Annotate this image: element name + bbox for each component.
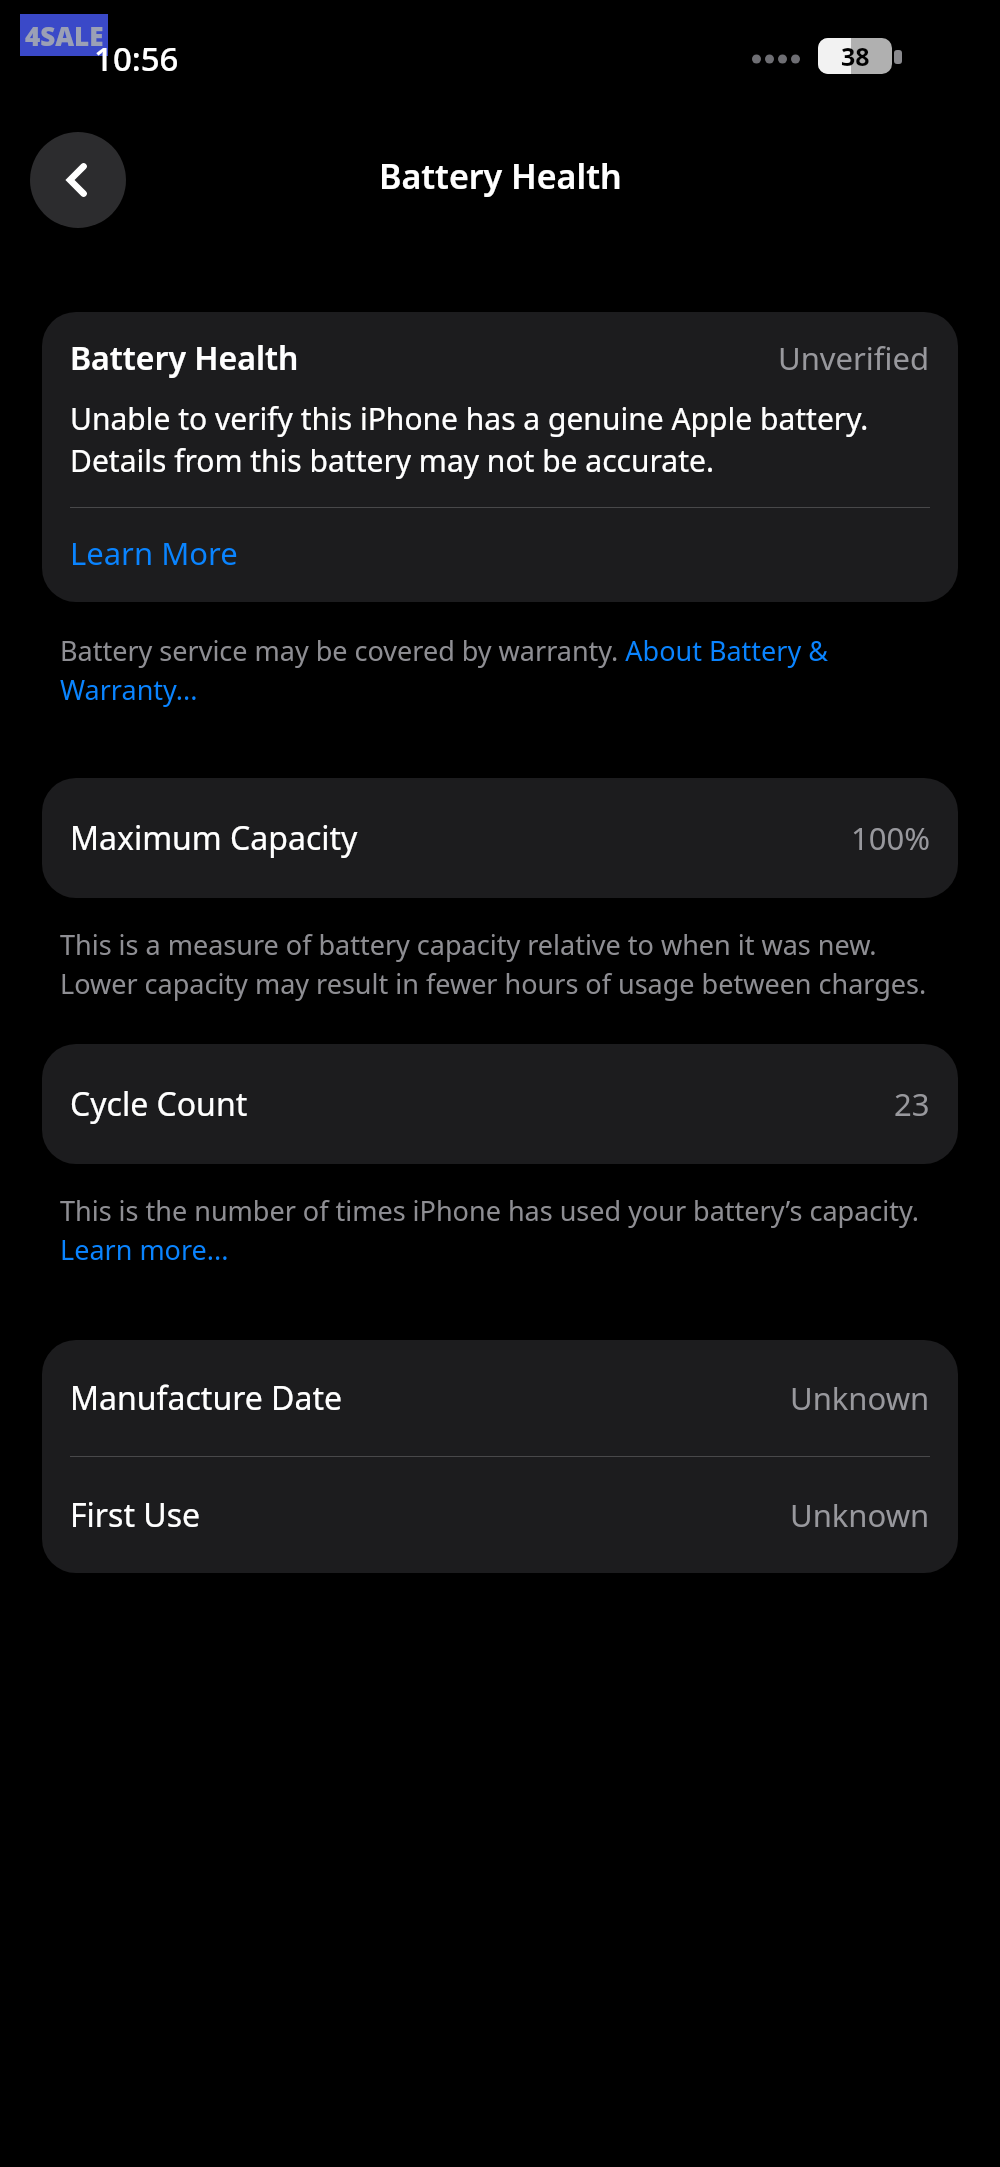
staticText: 10:56 [94,36,179,81]
staticText: First Use [70,1493,790,1537]
button[interactable]: This is the number of times iPhone has u… [60,1192,940,1268]
staticText: 38 [841,39,870,73]
staticText: Cycle Count [70,1082,894,1126]
button[interactable]: Back [30,132,126,228]
button[interactable]: Battery Health [42,312,958,602]
button[interactable]: Cycle Count [42,1044,958,1164]
staticText: Unknown [790,1377,930,1419]
staticText: 100% [851,817,930,859]
staticText: Battery Health [379,153,622,199]
staticText: Maximum Capacity [70,816,851,860]
button[interactable]: Learn More [70,532,238,574]
staticText: This is a measure of battery capacity re… [60,926,940,1002]
button[interactable]: Manufacture Date [42,1340,958,1456]
button[interactable]: Maximum Capacity [42,778,958,898]
staticText: Unknown [790,1494,930,1536]
staticText: Unable to verify this iPhone has a genui… [70,398,930,481]
staticText: This is the number of times iPhone has u… [60,1192,940,1268]
staticText: Manufacture Date [70,1376,790,1420]
staticText: Unverified [778,337,930,379]
staticText: Battery Health [70,336,778,380]
staticText: 23 [894,1083,930,1125]
staticText: Battery service may be covered by warran… [60,632,940,708]
button[interactable]: First Use [42,1457,958,1573]
button[interactable]: Battery service may be covered by warran… [60,632,940,708]
staticText: Learn More [70,532,238,574]
staticText: 4SALE [25,18,104,53]
